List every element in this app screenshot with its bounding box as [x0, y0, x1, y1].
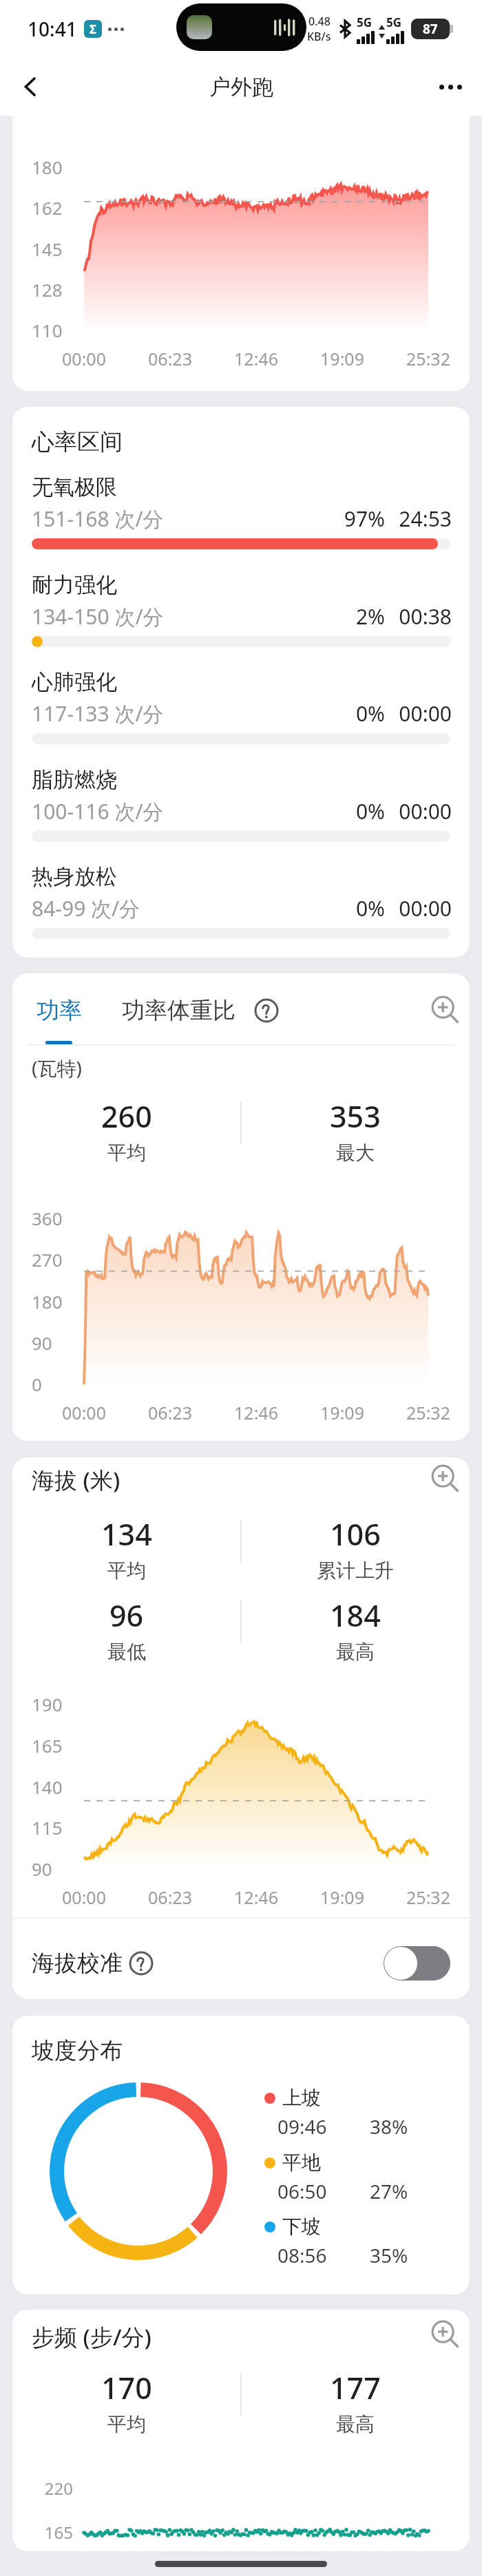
staticText: 35% [370, 2242, 408, 2268]
staticText: 5G [357, 14, 373, 30]
staticText: 353 [330, 1096, 381, 1137]
staticText: 00:00 [327, 797, 452, 825]
staticText: 累计上升 [317, 1559, 394, 1583]
button[interactable]: Expand chart [431, 995, 459, 1023]
button[interactable]: Help [255, 999, 278, 1022]
button[interactable]: More options [430, 66, 471, 107]
staticText: 25:32 [394, 1401, 463, 1424]
button[interactable]: Back [10, 66, 51, 107]
button[interactable]: Expand chart [431, 2320, 459, 2347]
button[interactable]: Expand chart [431, 1464, 459, 1492]
staticText: 19:09 [308, 1886, 377, 1909]
button[interactable]: 海拔校准 [12, 1923, 470, 1999]
staticText: 耐力强化 [32, 571, 117, 598]
staticText: 2% [245, 602, 385, 631]
staticText: 97% [245, 505, 385, 533]
staticText: 165 [32, 1733, 63, 1757]
staticText: 27% [370, 2178, 408, 2204]
staticText: 184 [330, 1595, 381, 1636]
staticText: 220 [12, 2477, 73, 2500]
staticText: 24:53 [327, 505, 452, 533]
staticText: 115 [32, 1815, 63, 1839]
staticText: 0% [245, 699, 385, 728]
staticText: 190 [32, 1692, 63, 1716]
staticText: 360 [32, 1206, 63, 1230]
staticText: 12:46 [222, 1886, 291, 1909]
staticText: 180 [32, 1289, 63, 1313]
staticText: 145 [32, 237, 63, 261]
staticText: 90 [32, 1331, 52, 1355]
staticText: 90 [32, 1857, 52, 1881]
staticText: 00:00 [50, 347, 118, 370]
staticText: 平均 [107, 2412, 146, 2436]
button[interactable]: 功率 [36, 996, 82, 1025]
staticText: 100-116 次/分 [32, 797, 164, 825]
staticText: (瓦特) [32, 1055, 82, 1081]
staticText: 19:09 [308, 347, 377, 370]
staticText: 功率体重比 [122, 996, 235, 1025]
staticText: 心肺强化 [32, 668, 117, 695]
staticText: 热身放松 [32, 863, 117, 890]
staticText: 117-133 次/分 [32, 699, 164, 728]
staticText: 87 [423, 20, 438, 38]
staticText: 最低 [107, 1640, 146, 1664]
staticText: 170 [101, 2367, 152, 2408]
staticText: 06:50 [277, 2178, 327, 2204]
staticText: 脂肪燃烧 [32, 766, 117, 793]
staticText: 0 [32, 1372, 42, 1396]
staticText: 功率 [36, 996, 82, 1025]
staticText: 06:23 [136, 347, 205, 370]
staticText: 128 [32, 277, 63, 302]
staticText: 08:56 [277, 2242, 327, 2268]
staticText: 19:09 [308, 1401, 377, 1424]
staticText: 步频 (步/分) [32, 2321, 151, 2352]
staticText: Σ [90, 21, 96, 37]
staticText: 5G [386, 14, 402, 30]
staticText: 平地 [282, 2151, 321, 2175]
staticText: 0.48 [308, 14, 331, 29]
staticText: 151-168 次/分 [32, 505, 164, 533]
staticText: 106 [330, 1514, 381, 1554]
button[interactable]: 功率体重比 [122, 996, 235, 1025]
staticText: 140 [32, 1775, 63, 1799]
staticText: 96 [109, 1595, 144, 1636]
staticText: 10:41 [28, 16, 77, 42]
staticText: 134-150 次/分 [32, 602, 164, 631]
staticText: 00:00 [50, 1401, 118, 1424]
staticText: 162 [32, 196, 63, 220]
staticText: 最高 [336, 1640, 375, 1664]
staticText: 坡度分布 [32, 2036, 123, 2065]
staticText: 260 [101, 1096, 152, 1137]
staticText: 0% [245, 797, 385, 825]
staticText: 下坡 [282, 2215, 321, 2239]
staticText: 平均 [107, 1141, 146, 1165]
staticText: 00:00 [327, 699, 452, 728]
staticText: 最高 [336, 2412, 375, 2436]
staticText: 心率区间 [32, 427, 123, 456]
staticText: 最大 [336, 1141, 375, 1165]
staticText: 00:00 [327, 894, 452, 922]
staticText: 户外跑 [209, 74, 273, 101]
staticText: 84-99 次/分 [32, 894, 140, 922]
staticText: 无氧极限 [32, 474, 117, 500]
staticText: 110 [32, 318, 63, 342]
staticText: 25:32 [394, 347, 463, 370]
staticText: 25:32 [394, 1886, 463, 1909]
staticText: 06:23 [136, 1401, 205, 1424]
staticText: 09:46 [277, 2113, 327, 2140]
staticText: 海拔 (米) [32, 1464, 120, 1495]
staticText: 134 [101, 1514, 152, 1554]
staticText: 00:38 [327, 602, 452, 631]
staticText: 00:00 [50, 1886, 118, 1909]
staticText: 0% [245, 894, 385, 922]
staticText: 12:46 [222, 347, 291, 370]
staticText: KB/s [307, 29, 331, 44]
staticText: 270 [32, 1247, 63, 1271]
staticText: 海拔校准 [32, 1949, 123, 1978]
staticText: 165 [12, 2521, 73, 2544]
staticText: 12:46 [222, 1401, 291, 1424]
staticText: 06:23 [136, 1886, 205, 1909]
staticText: 180 [32, 155, 63, 179]
staticText: 平均 [107, 1559, 146, 1583]
staticText: 38% [370, 2113, 408, 2140]
